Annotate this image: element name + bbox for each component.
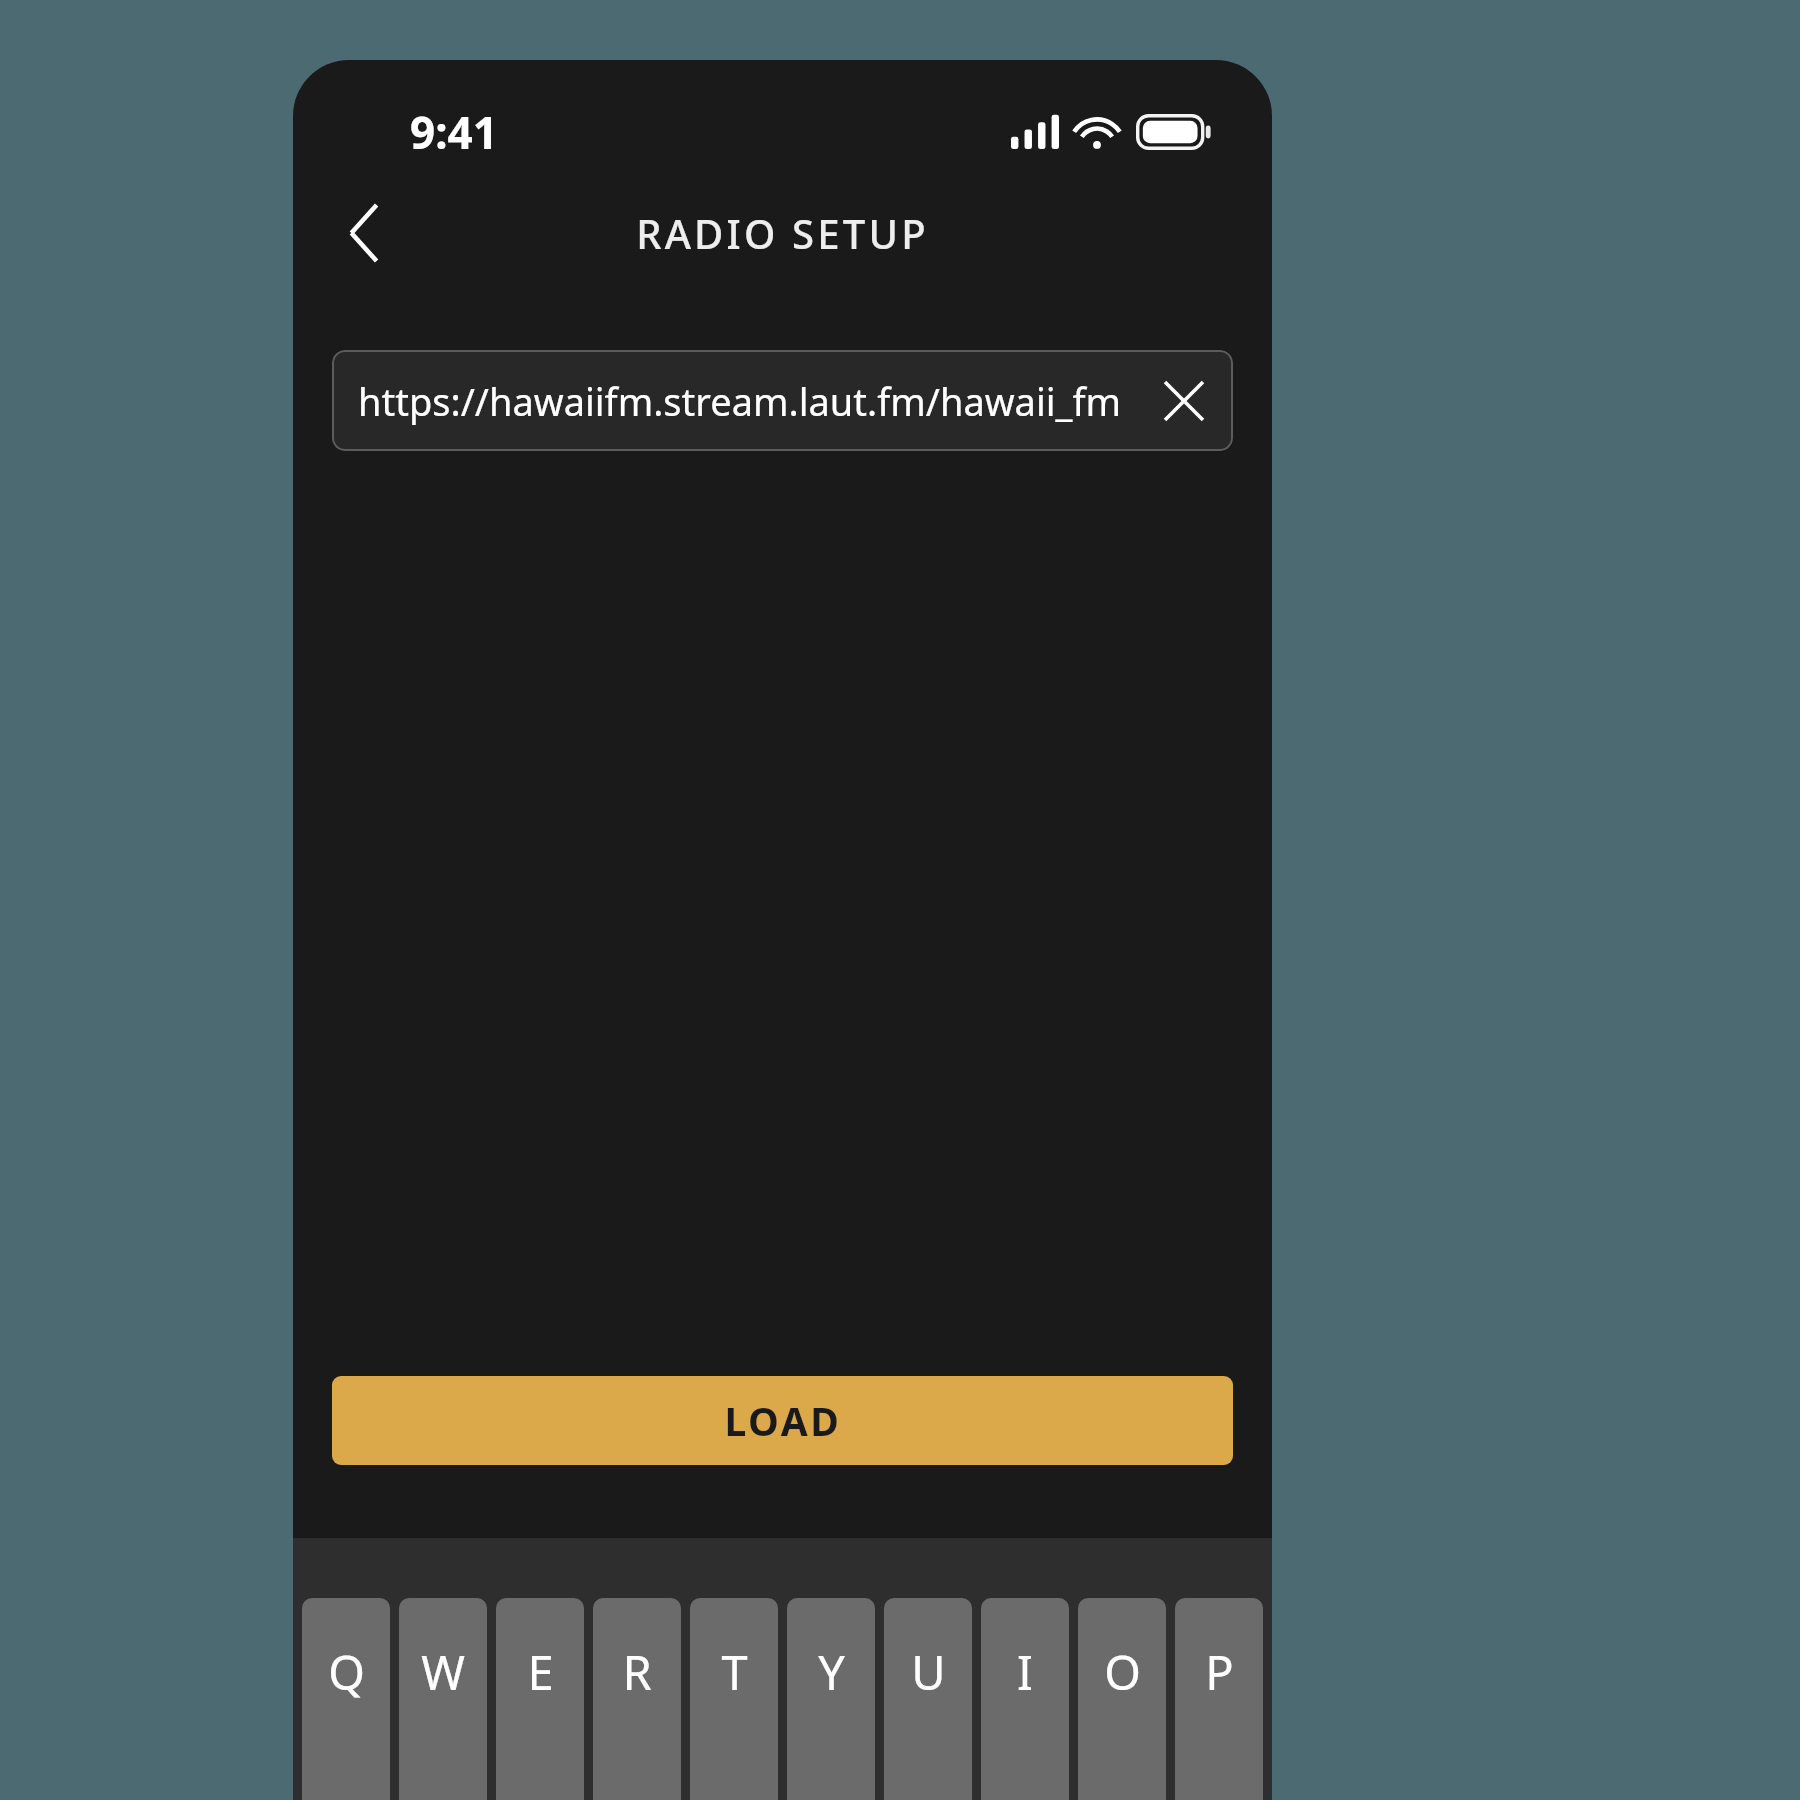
staticText: P [1205, 1640, 1234, 1704]
staticText: LOAD [724, 1394, 842, 1447]
staticText: RADIO SETUP [636, 206, 929, 260]
button[interactable]: R [593, 1598, 681, 1800]
button[interactable]: P [1175, 1598, 1263, 1800]
button[interactable]: O [1078, 1598, 1166, 1800]
button[interactable]: T [690, 1598, 778, 1800]
staticText: U [911, 1640, 946, 1704]
button[interactable]: W [399, 1598, 487, 1800]
staticText: E [527, 1640, 554, 1704]
button[interactable]: Y [787, 1598, 875, 1800]
staticText: W [421, 1640, 465, 1704]
button[interactable]: Clear text [1153, 370, 1215, 432]
staticText: Q [328, 1640, 365, 1704]
button[interactable]: Back [323, 192, 405, 274]
staticText: O [1104, 1640, 1141, 1704]
button[interactable]: I [981, 1598, 1069, 1800]
button[interactable]: https://hawaiifm.stream.laut.fm/hawaii_f… [332, 350, 1233, 451]
staticText: T [721, 1640, 748, 1704]
staticText: https://hawaiifm.stream.laut.fm/hawaii_f… [358, 375, 1121, 427]
button[interactable]: U [884, 1598, 972, 1800]
button[interactable]: LOAD [332, 1376, 1233, 1465]
button[interactable]: Q [302, 1598, 390, 1800]
button[interactable]: E [496, 1598, 584, 1800]
staticText: 9:41 [410, 102, 498, 162]
staticText: I [1017, 1640, 1033, 1704]
staticText: Y [818, 1640, 845, 1704]
staticText: R [622, 1640, 652, 1704]
